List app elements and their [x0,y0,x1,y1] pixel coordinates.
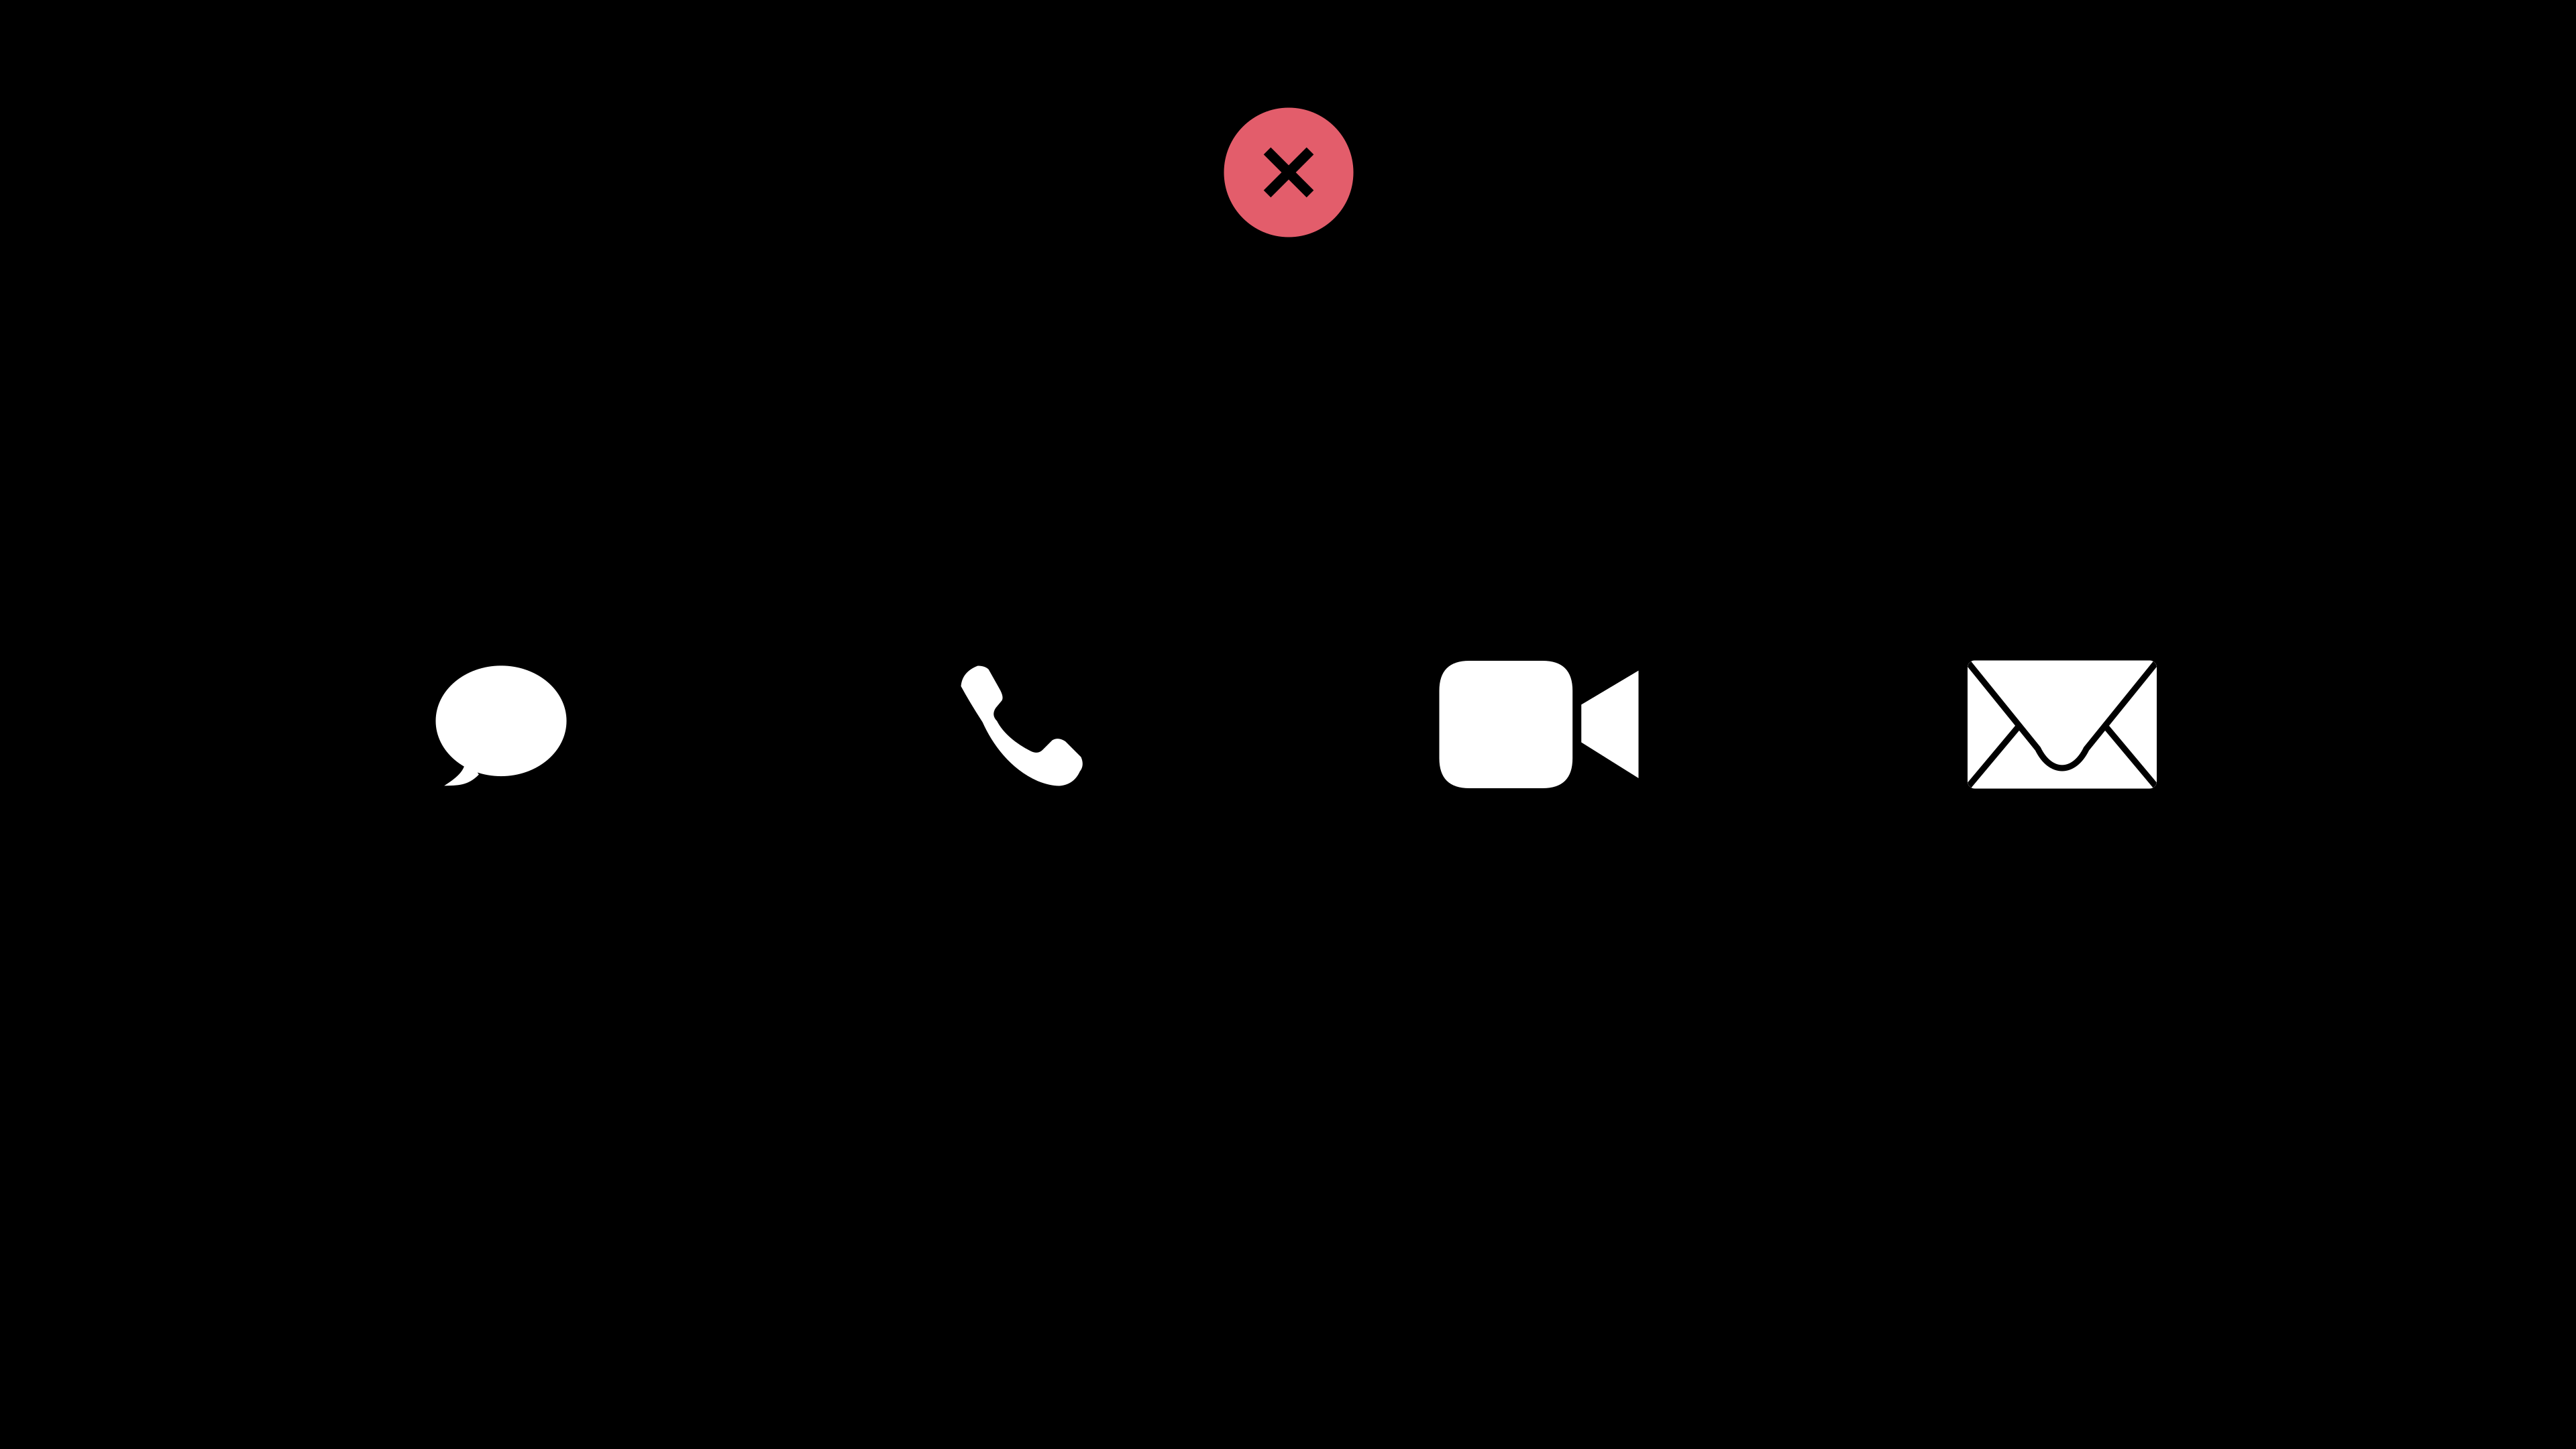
button[interactable]: Call [910,615,1132,837]
button[interactable]: Close [1224,108,1353,237]
button[interactable]: Mail [1951,614,2173,835]
button[interactable]: FaceTime [1428,614,1650,835]
button[interactable]: Message [390,615,612,837]
